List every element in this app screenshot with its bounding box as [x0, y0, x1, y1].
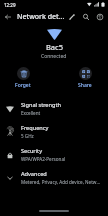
button[interactable]: Share network: [68, 65, 102, 91]
button[interactable]: Advanced: [0, 166, 108, 189]
staticText: Frequency: [21, 124, 49, 132]
button[interactable]: Back: [0, 9, 16, 25]
button[interactable]: Frequency: [0, 120, 108, 143]
staticText: Advanced: [21, 170, 47, 178]
staticText: Network details: [17, 12, 65, 22]
staticText: Metered, Privacy, Add device, Network de…: [21, 179, 102, 185]
button[interactable]: Help: [93, 10, 107, 24]
staticText: Excellent: [21, 110, 41, 116]
button[interactable]: Signal strength: [0, 97, 108, 120]
staticText: WPA/WPA2-Personal: [21, 156, 66, 162]
button[interactable]: Security: [0, 143, 108, 166]
staticText: Forget: [15, 82, 31, 89]
button[interactable]: Forget network: [6, 65, 40, 91]
staticText: 12:29: [4, 2, 16, 8]
staticText: 5 GHz: [21, 133, 34, 139]
staticText: Connected: [41, 53, 67, 60]
staticText: Security: [21, 147, 42, 155]
button[interactable]: Modify network: [65, 10, 79, 24]
button[interactable]: Search: [79, 10, 93, 24]
staticText: Share: [78, 82, 92, 89]
staticText: Signal strength: [21, 101, 61, 109]
staticText: Bac5: [46, 42, 63, 52]
